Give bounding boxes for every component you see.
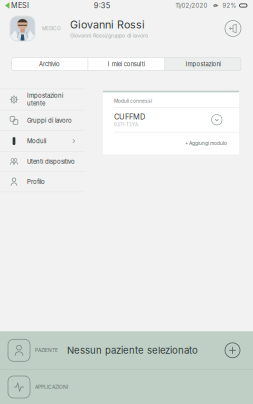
button[interactable]: Esci bbox=[225, 20, 241, 36]
staticText: utente bbox=[27, 100, 45, 107]
button[interactable]: PAZIENTE bbox=[0, 331, 253, 369]
staticText: Profilo bbox=[27, 178, 45, 185]
staticText: I miei consulti bbox=[108, 61, 145, 68]
button[interactable]: Moduli bbox=[0, 131, 84, 151]
staticText: 92% bbox=[222, 2, 236, 9]
staticText: 0311-T2YA bbox=[114, 122, 138, 127]
staticText: Impostazioni bbox=[185, 61, 220, 68]
staticText: Gruppi di lavoro bbox=[27, 117, 72, 124]
staticText: APPLICAZIONI bbox=[35, 384, 68, 390]
button[interactable]: Mostra dettagli modulo bbox=[212, 115, 222, 125]
staticText: MESI bbox=[11, 1, 29, 10]
button[interactable]: APPLICAZIONI bbox=[0, 370, 253, 404]
staticText: Impostazioni bbox=[27, 92, 63, 99]
staticText: MEDICO bbox=[42, 26, 61, 31]
staticText: Utenti dispositivo bbox=[27, 158, 75, 165]
staticText: Moduli connessi bbox=[114, 98, 152, 104]
staticText: 9:35 bbox=[94, 1, 111, 10]
button[interactable]: I miei consulti bbox=[88, 58, 164, 71]
staticText: 11/02/2020 bbox=[175, 2, 207, 9]
button[interactable]: Profilo bbox=[0, 172, 84, 192]
button[interactable]: Gruppi di lavoro bbox=[0, 110, 84, 130]
staticText: CUFFMD bbox=[114, 112, 145, 121]
staticText: + Aggiungi modulo bbox=[185, 140, 227, 146]
staticText: Nessun paziente selezionato bbox=[67, 344, 198, 356]
staticText: Moduli bbox=[27, 137, 46, 145]
staticText: PAZIENTE bbox=[35, 347, 58, 353]
button[interactable]: Impostazioni bbox=[0, 89, 84, 110]
staticText: Archivio bbox=[39, 61, 60, 68]
button[interactable]: Utenti dispositivo bbox=[0, 152, 84, 171]
button[interactable]: Impostazioni bbox=[165, 58, 241, 71]
staticText: Giovanni Rossi bbox=[70, 18, 145, 31]
button[interactable]: Archivio bbox=[11, 58, 88, 71]
staticText: Giovanni Rossi/gruppo di lavoro bbox=[70, 32, 148, 39]
button[interactable]: + Aggiungi modulo bbox=[103, 132, 239, 154]
